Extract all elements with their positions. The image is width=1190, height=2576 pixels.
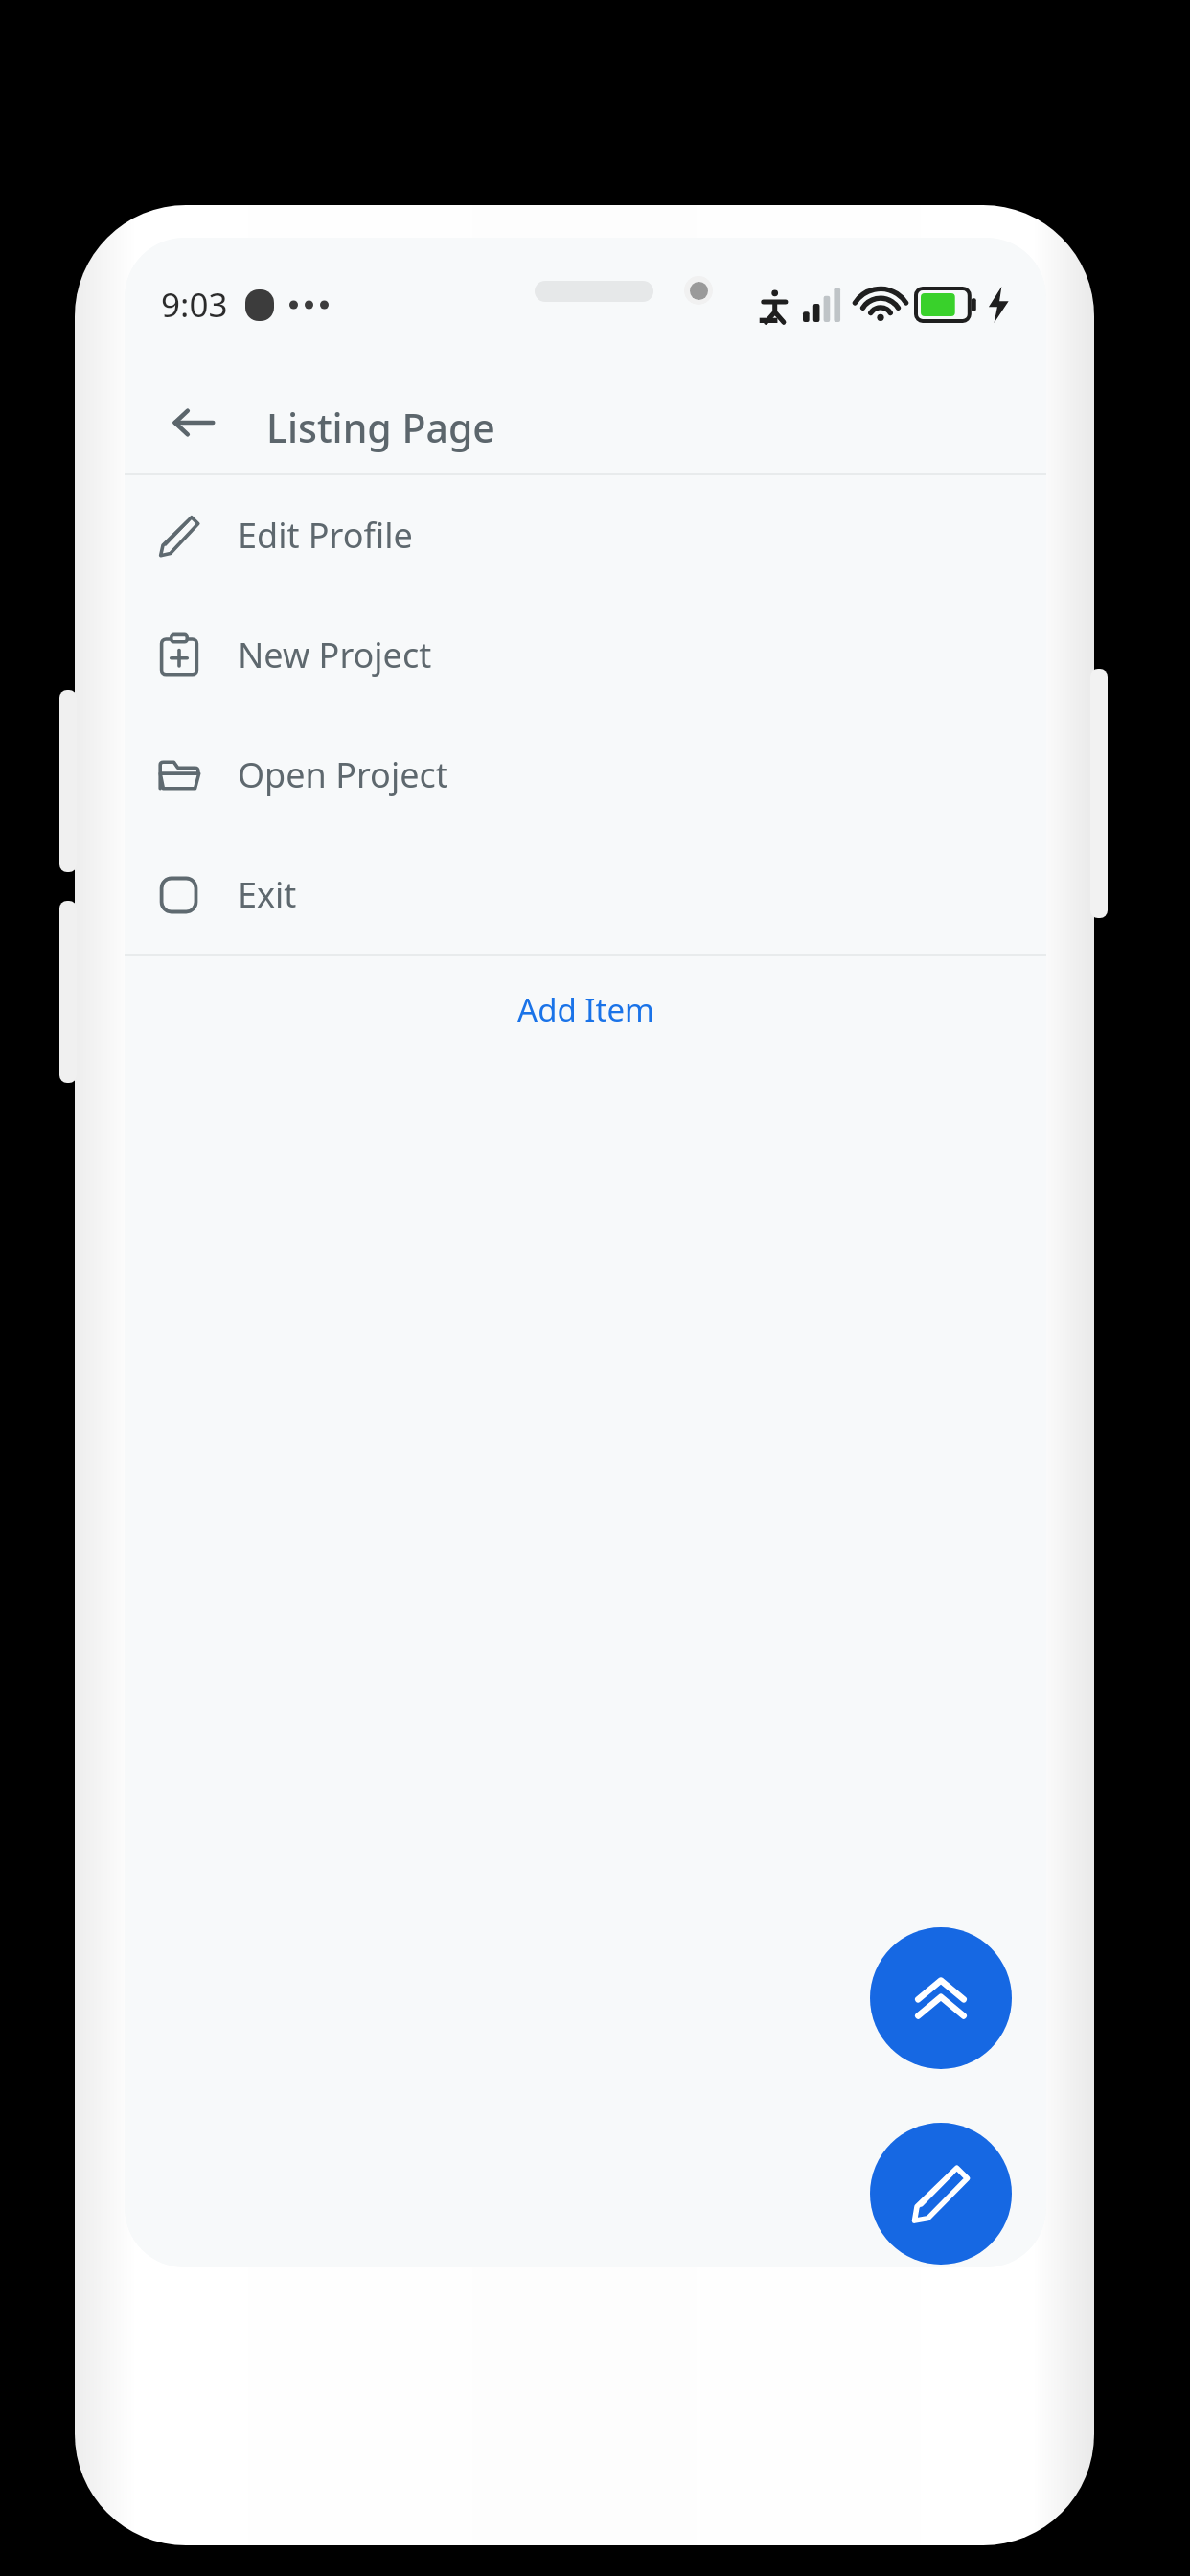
staticText: Exit: [238, 871, 297, 918]
button[interactable]: Exit: [125, 835, 1046, 954]
staticText: Open Project: [238, 751, 448, 798]
button[interactable]: Scroll to top: [870, 1927, 1012, 2069]
button[interactable]: Edit Profile: [125, 475, 1046, 595]
button[interactable]: Edit: [870, 2123, 1012, 2265]
staticText: Edit Profile: [238, 512, 413, 559]
staticText: 9:03: [161, 282, 228, 328]
staticText: Listing Page: [266, 401, 495, 454]
staticText: Add Item: [517, 988, 654, 1031]
button[interactable]: New Project: [125, 595, 1046, 715]
button[interactable]: Back: [148, 372, 240, 473]
staticText: New Project: [238, 632, 432, 678]
button[interactable]: Add Item: [125, 956, 1046, 1062]
button[interactable]: Open Project: [125, 715, 1046, 835]
